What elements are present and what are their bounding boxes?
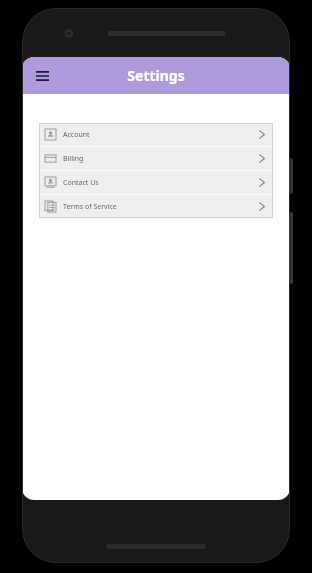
staticText: Account <box>63 130 90 140</box>
button[interactable]: Account <box>39 123 273 146</box>
staticText: Contact Us <box>63 178 99 188</box>
button[interactable]: Contact Us <box>39 171 273 194</box>
button[interactable]: Open navigation menu <box>31 65 53 87</box>
button[interactable]: Billing <box>39 147 273 170</box>
staticText: Terms of Service <box>63 202 117 212</box>
button[interactable]: Terms of Service <box>39 195 273 218</box>
staticText: Settings <box>127 66 185 85</box>
staticText: Billing <box>63 154 84 164</box>
